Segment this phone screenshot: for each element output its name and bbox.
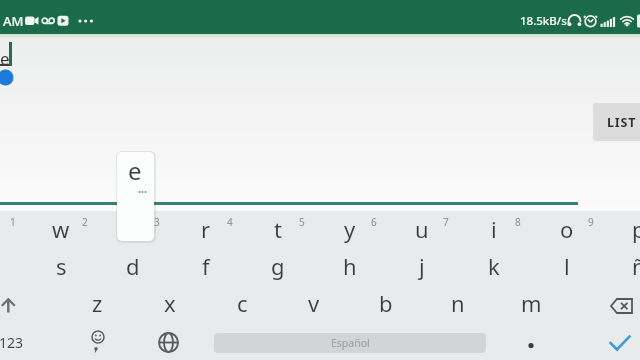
- button[interactable]: h: [314, 246, 386, 286]
- button[interactable]: w: [25, 209, 97, 249]
- staticText: d: [126, 251, 140, 281]
- staticText: o: [560, 214, 574, 244]
- staticText: h: [343, 251, 357, 281]
- staticText: g: [271, 251, 285, 281]
- button[interactable]: n: [422, 283, 494, 323]
- staticText: 4: [227, 215, 233, 229]
- button[interactable]: ñ: [603, 246, 640, 286]
- button[interactable]: LIST: [593, 103, 640, 141]
- button[interactable]: m: [495, 283, 567, 323]
- staticText: e: [0, 47, 10, 70]
- staticText: j: [419, 251, 425, 281]
- staticText: s: [56, 251, 67, 281]
- button[interactable]: k: [458, 246, 530, 286]
- button[interactable]: [0, 288, 34, 322]
- staticText: 6: [371, 215, 377, 229]
- staticText: k: [488, 251, 500, 281]
- button[interactable]: l: [531, 246, 603, 286]
- button[interactable]: r: [170, 209, 242, 249]
- staticText: n: [451, 288, 465, 318]
- button[interactable]: o: [531, 209, 603, 249]
- button[interactable]: ?123: [0, 330, 28, 354]
- button[interactable]: j: [386, 246, 458, 286]
- staticText: 8: [515, 215, 521, 229]
- staticText: f: [202, 251, 210, 281]
- staticText: w: [52, 214, 70, 244]
- button[interactable]: i: [458, 209, 530, 249]
- staticText: 3: [154, 215, 160, 229]
- staticText: ?123: [0, 333, 24, 352]
- staticText: l: [564, 251, 570, 281]
- button[interactable]: g: [242, 246, 314, 286]
- staticText: AM: [3, 12, 24, 30]
- button[interactable]: z: [61, 283, 133, 323]
- staticText: u: [415, 214, 429, 244]
- button[interactable]: b: [350, 283, 422, 323]
- staticText: v: [308, 288, 320, 318]
- staticText: 2: [82, 215, 88, 229]
- button[interactable]: f: [170, 246, 242, 286]
- button[interactable]: q: [0, 209, 25, 249]
- staticText: 5: [299, 215, 305, 229]
- staticText: y: [344, 214, 356, 244]
- staticText: ñ: [632, 251, 640, 281]
- button[interactable]: p: [603, 209, 640, 249]
- staticText: 7: [443, 215, 449, 229]
- button[interactable]: [513, 331, 549, 357]
- button[interactable]: y: [314, 209, 386, 249]
- button[interactable]: t: [242, 209, 314, 249]
- button[interactable]: Español: [214, 333, 486, 353]
- button[interactable]: [80, 326, 116, 358]
- staticText: 1: [10, 215, 16, 229]
- staticText: r: [201, 214, 211, 244]
- button[interactable]: d: [97, 246, 169, 286]
- staticText: m: [521, 288, 542, 318]
- staticText: 9: [588, 215, 594, 229]
- staticText: b: [379, 288, 393, 318]
- button[interactable]: s: [25, 246, 97, 286]
- staticText: c: [237, 288, 248, 318]
- staticText: LIST: [607, 114, 637, 131]
- button[interactable]: [604, 292, 640, 320]
- button[interactable]: u: [386, 209, 458, 249]
- button[interactable]: v: [278, 283, 350, 323]
- staticText: i: [491, 214, 497, 244]
- staticText: e: [128, 154, 142, 187]
- button[interactable]: x: [134, 283, 206, 323]
- button[interactable]: c: [206, 283, 278, 323]
- staticText: t: [274, 214, 282, 244]
- staticText: Español: [331, 336, 370, 350]
- staticText: z: [92, 288, 103, 318]
- staticText: x: [164, 288, 176, 318]
- staticText: 18.5kB/s: [520, 13, 567, 29]
- button[interactable]: [151, 325, 187, 360]
- button[interactable]: [602, 328, 640, 358]
- staticText: p: [632, 214, 640, 244]
